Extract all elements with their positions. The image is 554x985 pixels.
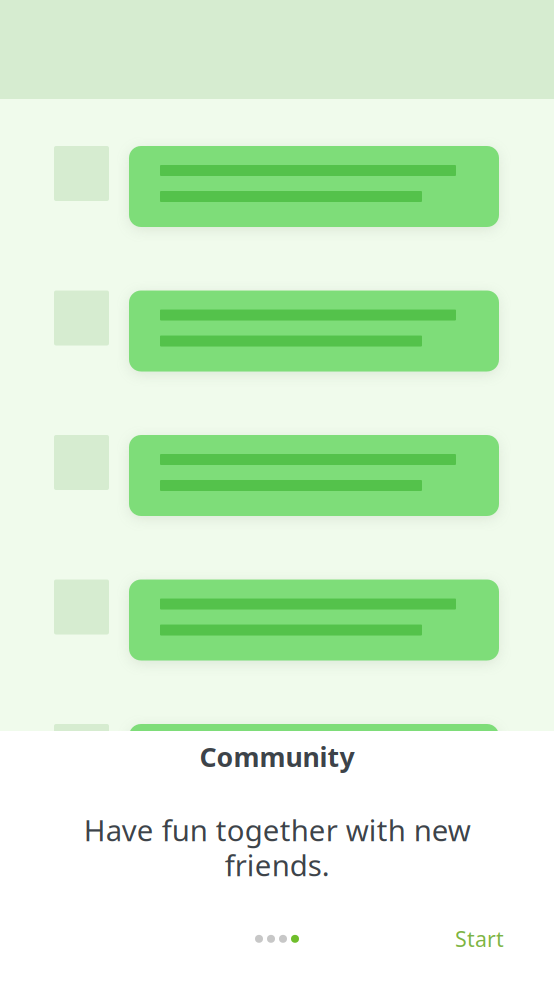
button[interactable]: Community post: [54, 435, 499, 516]
staticText: Community: [199, 739, 354, 774]
staticText: Have fun together with new friends.: [83, 810, 470, 884]
button[interactable]: Community post: [54, 579, 499, 660]
staticText: Start: [455, 925, 504, 953]
button[interactable]: Community post: [54, 724, 499, 805]
button[interactable]: Start: [447, 919, 512, 959]
button[interactable]: Community post: [54, 290, 499, 371]
button[interactable]: Community post: [54, 146, 499, 227]
